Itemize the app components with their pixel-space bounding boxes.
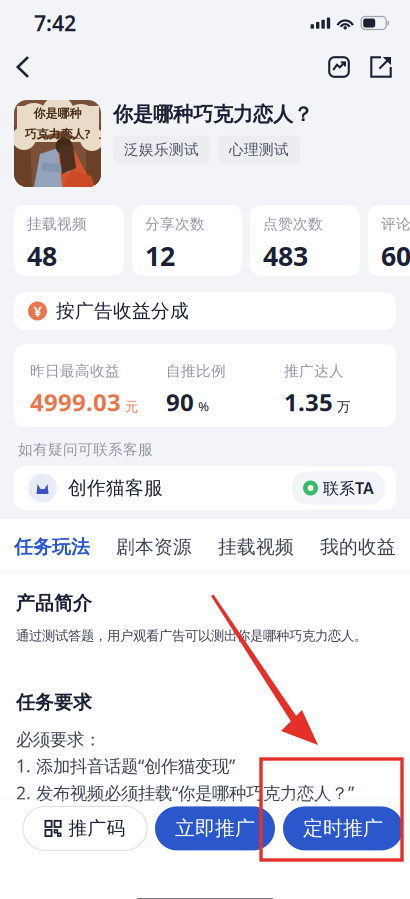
button[interactable]: 剧本资源 <box>103 523 205 571</box>
button[interactable]: Statistics <box>318 46 360 88</box>
staticText: 1.35 <box>284 386 333 418</box>
staticText: 自推比例 <box>166 362 226 380</box>
staticText: 你是哪种 <box>33 106 81 121</box>
staticText: 通过测试答题，用户观看广告可以测出你是哪种巧克力恋人。 <box>16 628 367 644</box>
staticText: 推广码 <box>68 817 125 840</box>
staticText: 7:42 <box>34 9 76 37</box>
staticText: 1. 添加抖音话题“创作猫变现” <box>16 754 235 777</box>
staticText: 60 <box>381 238 410 273</box>
staticText: 产品简介 <box>16 592 92 615</box>
staticText: 点赞次数 <box>263 215 323 233</box>
button[interactable]: Share <box>360 46 402 88</box>
button[interactable]: 我的收益 <box>307 523 409 571</box>
staticText: 如有疑问可联系客服 <box>18 440 153 458</box>
staticText: 定时推广 <box>303 816 383 841</box>
button[interactable]: 推广码 <box>23 806 147 850</box>
button[interactable]: Back <box>2 46 44 88</box>
button[interactable]: 立即推广 <box>155 806 275 850</box>
staticText: 剧本资源 <box>116 535 192 558</box>
staticText: 昨日最高收益 <box>30 362 120 380</box>
button[interactable]: 联系TA <box>292 471 385 505</box>
staticText: 任务要求 <box>16 691 92 714</box>
button[interactable]: 挂载视频 <box>205 523 307 571</box>
staticText: 立即推广 <box>175 816 255 841</box>
staticText: 我的收益 <box>320 535 396 558</box>
staticText: 12 <box>145 238 175 273</box>
staticText: 48 <box>27 238 57 273</box>
staticText: 推广达人 <box>284 362 344 380</box>
staticText: 483 <box>263 238 308 273</box>
staticText: 挂载视频 <box>218 535 294 558</box>
staticText: 必须要求： <box>16 729 101 750</box>
staticText: 元 <box>125 399 138 415</box>
staticText: 心理测试 <box>229 141 289 159</box>
staticText: 挂载视频 <box>27 215 87 233</box>
staticText: 评论次数 <box>381 215 410 233</box>
staticText: 万 <box>337 399 350 415</box>
staticText: 分享次数 <box>145 215 205 233</box>
staticText: ¥ <box>33 301 41 321</box>
staticText: 2. 发布视频必须挂载“你是哪种巧克力恋人？” <box>16 781 354 804</box>
staticText: 任务玩法 <box>14 535 90 558</box>
staticText: 90 <box>166 386 194 418</box>
staticText: 创作猫客服 <box>68 476 163 499</box>
staticText: 泛娱乐测试 <box>124 141 199 159</box>
staticText: 4999.03 <box>30 386 121 418</box>
staticText: 你是哪种巧克力恋人？ <box>113 102 313 127</box>
button[interactable]: 任务玩法 <box>1 523 103 571</box>
staticText: 巧克力恋人? <box>24 126 90 142</box>
button[interactable]: 定时推广 <box>283 806 403 850</box>
staticText: % <box>198 397 209 415</box>
staticText: 联系TA <box>323 477 374 499</box>
staticText: 按广告收益分成 <box>56 299 189 322</box>
